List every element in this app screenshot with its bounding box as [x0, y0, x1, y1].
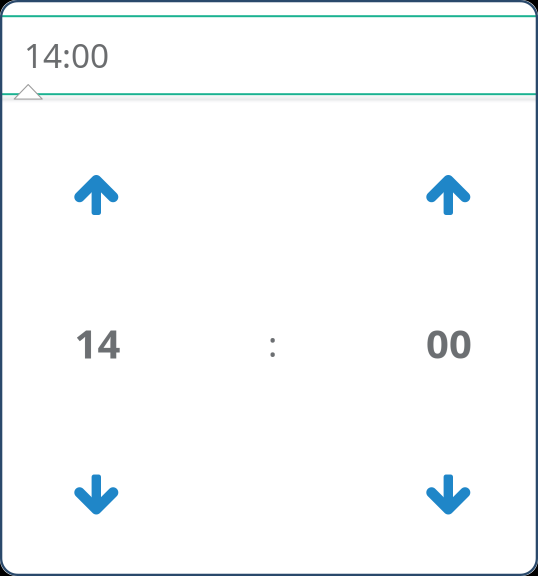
staticText: 14:00: [24, 33, 109, 77]
button[interactable]: Increase minute: [426, 175, 470, 215]
staticText: 14: [74, 316, 120, 369]
button[interactable]: Increase hour: [74, 175, 118, 215]
button[interactable]: 14:00: [24, 32, 124, 78]
button[interactable]: Decrease hour: [74, 474, 118, 514]
button[interactable]: Decrease minute: [426, 474, 470, 514]
staticText: :: [268, 320, 277, 366]
staticText: 00: [426, 316, 472, 369]
